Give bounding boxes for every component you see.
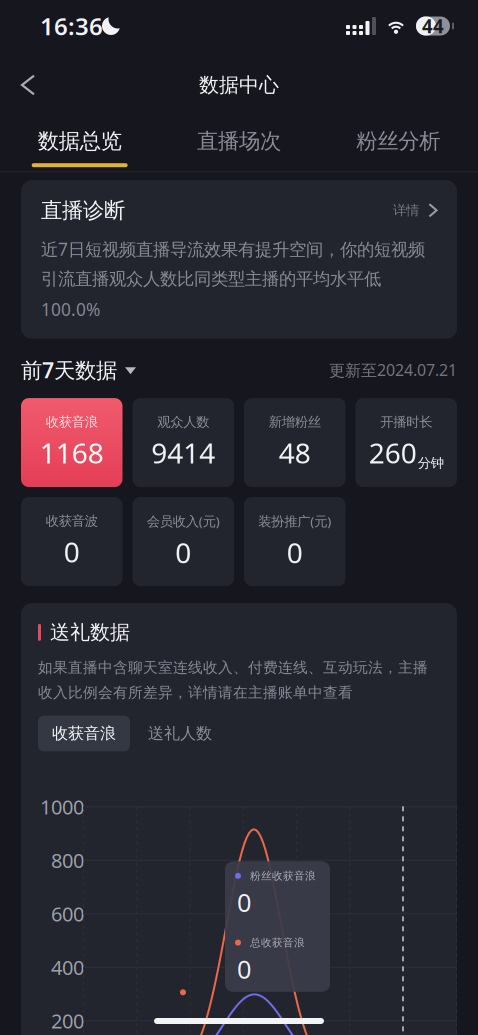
button[interactable]: 装扮推广(元) bbox=[244, 497, 345, 586]
staticText: 分钟 bbox=[418, 455, 444, 471]
button[interactable]: 新增粉丝 bbox=[244, 398, 345, 487]
staticText: 数据总览 bbox=[38, 128, 122, 154]
staticText: 收获音波 bbox=[46, 513, 98, 529]
staticText: 9414 bbox=[151, 434, 215, 471]
staticText: 详情 bbox=[393, 202, 419, 218]
staticText: 收获音浪 bbox=[46, 414, 98, 430]
staticText: 260 bbox=[369, 434, 417, 471]
staticText: 开播时长 bbox=[380, 414, 432, 430]
staticText: 0 bbox=[287, 534, 303, 571]
staticText: 400 bbox=[51, 954, 84, 981]
staticText: 会员收入(元) bbox=[147, 512, 220, 530]
staticText: 16:36 bbox=[40, 10, 103, 42]
button[interactable]: 观众人数 bbox=[132, 398, 234, 487]
staticText: 送礼数据 bbox=[50, 620, 130, 645]
staticText: 总收获音浪 bbox=[250, 936, 305, 949]
staticText: 近7日短视频直播导流效果有提升空间，你的短视频引流直播观众人数比同类型主播的平均… bbox=[41, 237, 425, 321]
staticText: 观众人数 bbox=[157, 414, 209, 430]
staticText: 200 bbox=[51, 1007, 84, 1034]
button[interactable]: 送礼人数 bbox=[134, 716, 226, 751]
button[interactable]: 会员收入(元) bbox=[132, 497, 234, 586]
staticText: 48 bbox=[279, 434, 311, 471]
button[interactable]: 数据总览 bbox=[0, 118, 159, 172]
staticText: 0 bbox=[237, 885, 251, 919]
button[interactable]: 收获音波 bbox=[21, 497, 122, 586]
staticText: 1000 bbox=[40, 793, 84, 820]
button[interactable]: 开播时长 bbox=[355, 398, 457, 487]
staticText: 前7天数据 bbox=[21, 356, 117, 384]
staticText: 直播诊断 bbox=[41, 197, 125, 223]
button[interactable]: 详情 bbox=[393, 197, 439, 223]
staticText: 粉丝分析 bbox=[356, 128, 440, 154]
staticText: 更新至2024.07.21 bbox=[329, 359, 457, 380]
staticText: 0 bbox=[175, 534, 191, 571]
staticText: 送礼人数 bbox=[148, 724, 212, 743]
staticText: 800 bbox=[51, 847, 84, 874]
staticText: 0 bbox=[64, 533, 80, 570]
staticText: 0 bbox=[237, 952, 251, 986]
button[interactable]: 粉丝分析 bbox=[319, 118, 478, 172]
staticText: 44 bbox=[422, 14, 444, 38]
staticText: 1168 bbox=[40, 434, 104, 471]
staticText: 数据中心 bbox=[199, 73, 279, 97]
button[interactable]: 收获音浪 bbox=[21, 398, 122, 487]
staticText: 如果直播中含聊天室连线收入、付费连线、互动玩法，主播收入比例会有所差异，详情请在… bbox=[38, 659, 428, 702]
button[interactable]: 前7天数据 bbox=[21, 353, 136, 387]
staticText: 粉丝收获音浪 bbox=[250, 869, 316, 882]
staticText: 600 bbox=[51, 900, 84, 927]
staticText: 收获音浪 bbox=[52, 724, 116, 743]
staticText: 直播场次 bbox=[197, 128, 281, 154]
button[interactable]: 直播场次 bbox=[159, 118, 319, 172]
staticText: 新增粉丝 bbox=[269, 414, 321, 430]
staticText: 装扮推广(元) bbox=[258, 512, 331, 530]
button[interactable]: 收获音浪 bbox=[38, 716, 130, 751]
button[interactable]: 返回 bbox=[0, 62, 54, 108]
